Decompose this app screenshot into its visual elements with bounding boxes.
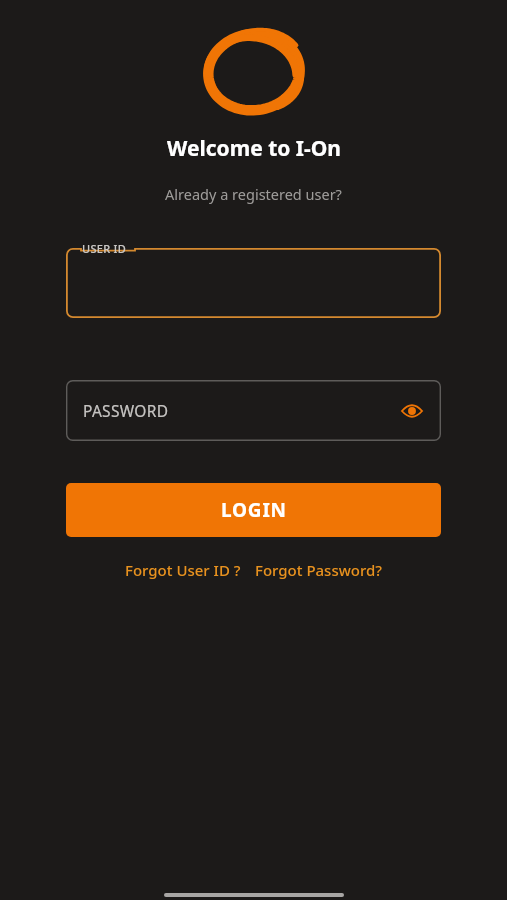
button[interactable]: Show password [397, 396, 427, 426]
staticText: USER ID [82, 241, 127, 256]
staticText: Forgot Password? [255, 560, 383, 580]
button[interactable]: LOGIN [66, 483, 441, 537]
button[interactable]: Forgot User ID ? [123, 558, 243, 582]
staticText: Welcome to I-On [167, 134, 341, 163]
button[interactable]: Forgot Password? [253, 558, 385, 582]
other: I-On logo [196, 26, 312, 118]
staticText: Forgot User ID ? [125, 560, 241, 580]
button[interactable]: PASSWORD [66, 380, 441, 441]
button[interactable]: USER ID [66, 248, 441, 318]
staticText: LOGIN [221, 497, 287, 523]
staticText: Already a registered user? [165, 184, 342, 204]
staticText: PASSWORD [83, 400, 397, 421]
